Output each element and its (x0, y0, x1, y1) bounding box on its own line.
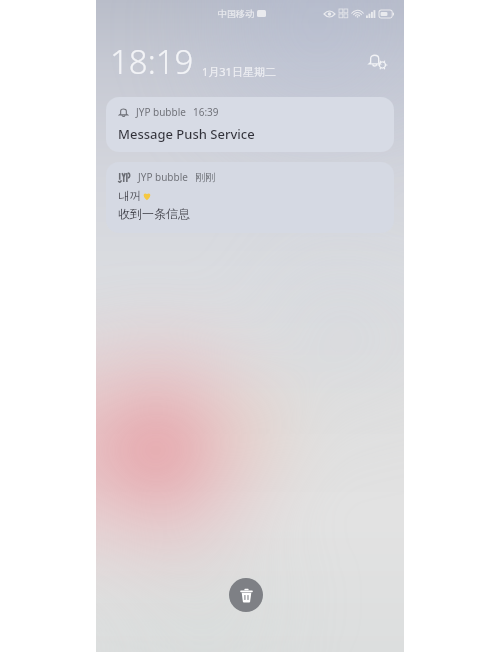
staticText: Message Push Service (118, 125, 255, 143)
staticText: JYP bubble (136, 105, 186, 119)
button[interactable]: JYP bubble (106, 97, 394, 152)
button[interactable]: Notification settings (364, 48, 390, 74)
staticText: 18:19 (110, 39, 194, 84)
button[interactable]: JYP bubble (106, 162, 394, 233)
staticText: 收到一条信息 (118, 206, 190, 221)
staticText: 1月31日星期二 (202, 64, 276, 79)
staticText: 16:39 (193, 105, 219, 119)
button[interactable]: Clear all notifications (229, 578, 263, 612)
staticText: 中国移动 (218, 8, 254, 19)
staticText: 내꺼 (118, 189, 141, 203)
staticText: 刚刚 (195, 171, 215, 184)
staticText: JYP bubble (138, 170, 188, 184)
